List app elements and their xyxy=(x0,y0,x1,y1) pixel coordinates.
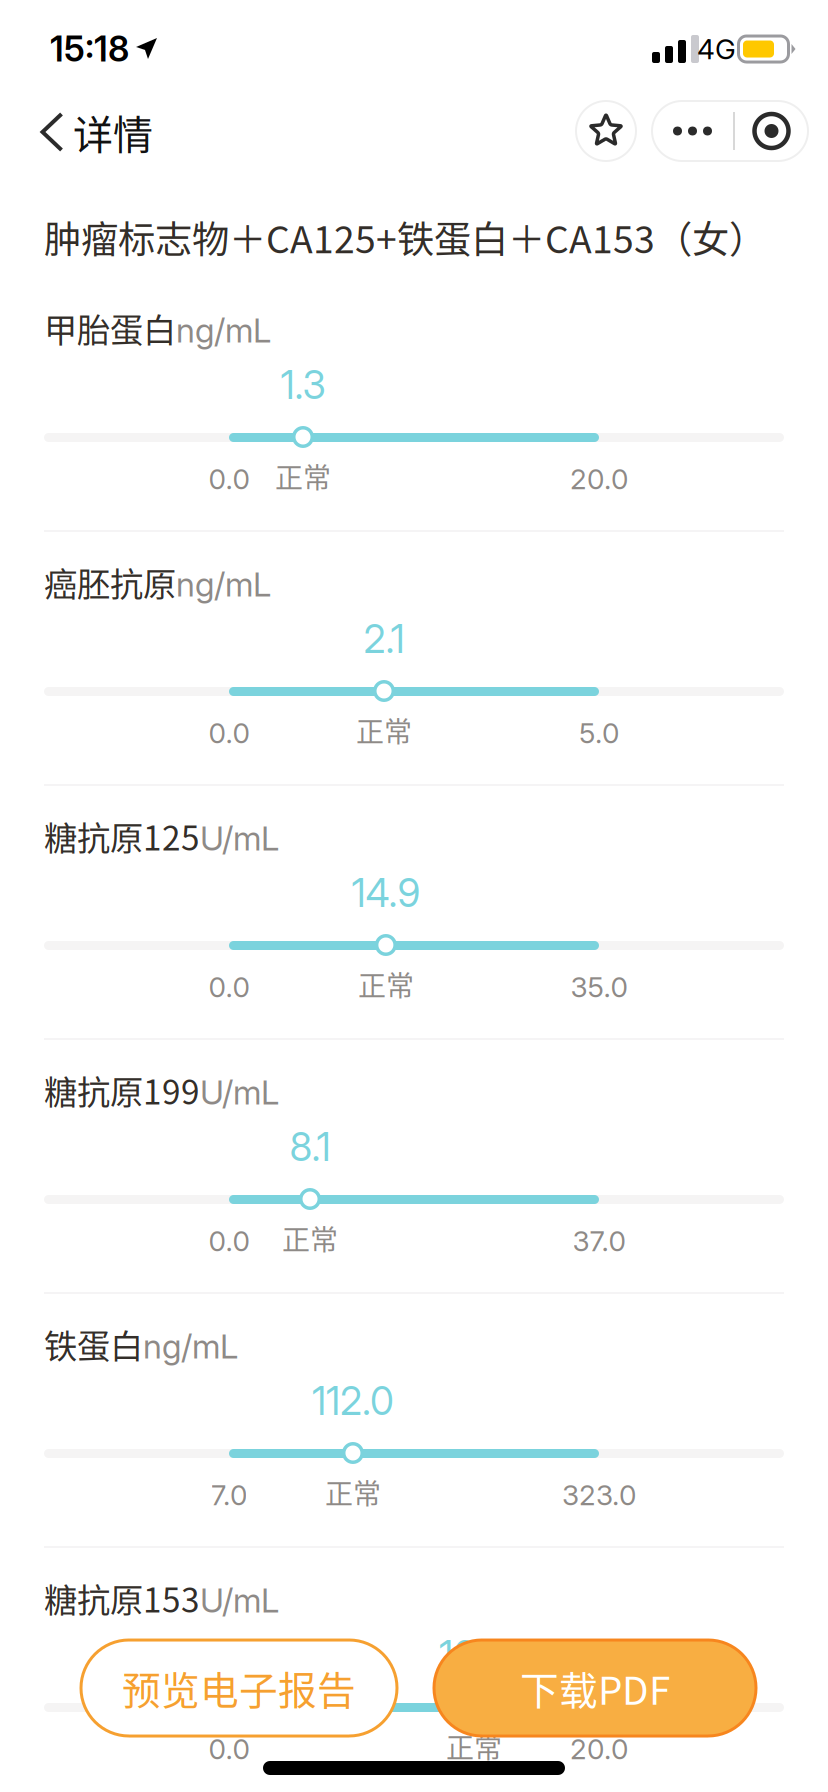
staticText: 7.0 xyxy=(211,1478,247,1512)
button[interactable]: 预览电子报告 xyxy=(81,1640,397,1736)
staticText: 铁蛋白 xyxy=(44,1320,143,1368)
staticText: 0.0 xyxy=(208,1732,249,1766)
staticText: U/mL xyxy=(200,1580,279,1620)
staticText: 正常 xyxy=(325,1472,381,1512)
staticText: 0.0 xyxy=(208,970,249,1004)
staticText: 癌胚抗原 xyxy=(44,558,176,606)
staticText: 10.4 xyxy=(439,1632,509,1678)
staticText: 14.9 xyxy=(351,870,420,916)
staticText: 112.0 xyxy=(312,1378,394,1424)
staticText: 8.1 xyxy=(289,1124,330,1170)
staticText: 正常 xyxy=(282,1218,338,1258)
staticText: 详情 xyxy=(73,103,153,161)
staticText: 0.0 xyxy=(208,462,249,496)
staticText: 糖抗原199 xyxy=(44,1066,200,1114)
staticText: ng/mL xyxy=(143,1326,238,1366)
staticText: ng/mL xyxy=(176,310,271,350)
button[interactable]: 下载PDF xyxy=(434,1640,756,1736)
button[interactable]: 详情 xyxy=(31,100,231,164)
staticText: 20.0 xyxy=(570,1732,628,1766)
staticText: 35.0 xyxy=(570,970,627,1004)
staticText: 37.0 xyxy=(572,1224,625,1258)
staticText: 正常 xyxy=(275,456,331,496)
staticText: 预览电子报告 xyxy=(122,1660,356,1716)
staticText: 下载PDF xyxy=(520,1660,670,1716)
staticText: 1.3 xyxy=(280,362,325,408)
staticText: 0.0 xyxy=(208,716,249,750)
button[interactable]: More options xyxy=(652,101,808,161)
staticText: 5.0 xyxy=(579,716,619,750)
staticText: 0.0 xyxy=(208,1224,249,1258)
staticText: 肿瘤标志物＋CA125+铁蛋白＋CA153（女） xyxy=(44,210,766,264)
staticText: 正常 xyxy=(446,1726,502,1766)
staticText: 糖抗原125 xyxy=(44,812,200,860)
staticText: 4G xyxy=(697,32,736,66)
staticText: 甲胎蛋白 xyxy=(44,304,176,352)
staticText: U/mL xyxy=(200,818,279,858)
staticText: 323.0 xyxy=(562,1478,636,1512)
staticText: 正常 xyxy=(356,710,412,750)
staticText: U/mL xyxy=(200,1072,279,1112)
staticText: 15:18 xyxy=(50,28,129,70)
staticText: ng/mL xyxy=(176,564,271,604)
button[interactable]: Favorite xyxy=(576,101,636,161)
staticText: 2.1 xyxy=(363,616,404,662)
staticText: 20.0 xyxy=(570,462,628,496)
staticText: 糖抗原153 xyxy=(44,1574,200,1622)
staticText: 正常 xyxy=(358,964,414,1004)
